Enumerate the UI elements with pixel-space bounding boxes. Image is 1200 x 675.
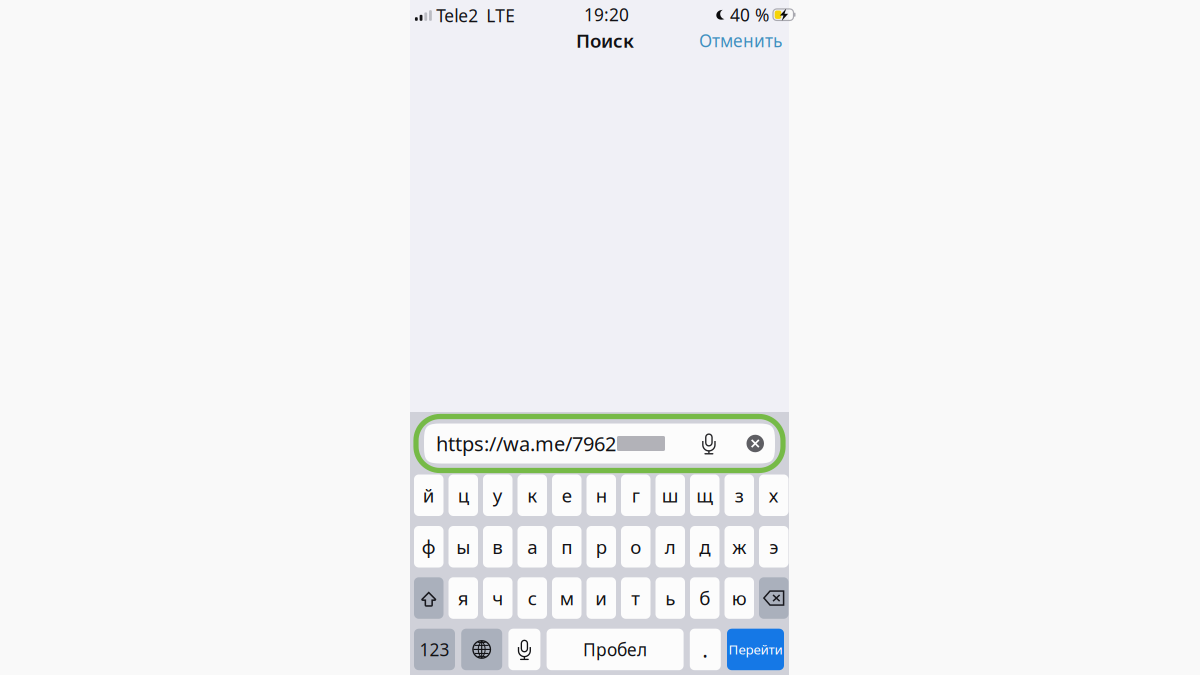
- button[interactable]: б: [690, 577, 719, 619]
- button[interactable]: ж: [724, 526, 754, 567]
- button[interactable]: й: [414, 474, 443, 516]
- button[interactable]: з: [724, 474, 754, 516]
- staticText: ч: [492, 586, 503, 610]
- staticText: Отменить: [699, 29, 782, 52]
- button[interactable]: м: [552, 577, 581, 619]
- staticText: ы: [456, 534, 470, 559]
- button[interactable]: е: [552, 474, 581, 516]
- button[interactable]: Delete: [759, 577, 788, 619]
- staticText: 19:20: [584, 3, 629, 26]
- staticText: у: [493, 483, 503, 508]
- button[interactable]: ш: [655, 474, 685, 516]
- staticText: о: [630, 534, 641, 559]
- staticText: 123: [419, 638, 449, 661]
- button[interactable]: о: [621, 526, 650, 567]
- button[interactable]: ы: [448, 526, 478, 567]
- staticText: щ: [696, 483, 713, 508]
- staticText: б: [699, 586, 710, 610]
- button[interactable]: к: [517, 474, 547, 516]
- button[interactable]: Dictate: [508, 629, 540, 670]
- staticText: Пробел: [583, 638, 647, 661]
- button[interactable]: х: [759, 474, 788, 516]
- button[interactable]: т: [621, 577, 650, 619]
- button[interactable]: и: [586, 577, 616, 619]
- staticText: д: [699, 534, 710, 559]
- button[interactable]: в: [483, 526, 512, 567]
- button[interactable]: л: [655, 526, 685, 567]
- button[interactable]: Отменить: [695, 24, 786, 57]
- staticText: Поиск: [576, 28, 634, 53]
- staticText: п: [561, 534, 572, 559]
- staticText: ю: [732, 586, 747, 610]
- staticText: с: [528, 586, 537, 610]
- staticText: л: [665, 534, 676, 559]
- button[interactable]: .: [690, 629, 721, 670]
- staticText: .: [702, 635, 708, 664]
- staticText: ь: [665, 586, 675, 610]
- button[interactable]: р: [586, 526, 616, 567]
- button[interactable]: д: [690, 526, 719, 567]
- staticText: р: [596, 534, 607, 559]
- button[interactable]: ц: [448, 474, 478, 516]
- staticText: LTE: [486, 4, 515, 27]
- button[interactable]: Пробел: [547, 629, 684, 670]
- staticText: в: [492, 534, 503, 559]
- staticText: я: [458, 586, 469, 610]
- button[interactable]: Перейти: [727, 629, 784, 670]
- button[interactable]: э: [759, 526, 788, 567]
- button[interactable]: щ: [690, 474, 719, 516]
- staticText: й: [423, 483, 435, 508]
- staticText: ш: [662, 483, 679, 508]
- button[interactable]: г: [621, 474, 650, 516]
- button[interactable]: а: [517, 526, 547, 567]
- staticText: г: [632, 483, 640, 508]
- staticText: и: [595, 586, 607, 610]
- staticText: 40 %: [730, 3, 769, 26]
- staticText: х: [769, 483, 779, 508]
- staticText: т: [631, 586, 640, 610]
- staticText: Tele2: [436, 4, 478, 27]
- button[interactable]: ч: [483, 577, 512, 619]
- staticText: з: [735, 483, 744, 508]
- staticText: ж: [732, 534, 746, 559]
- staticText: м: [560, 586, 574, 610]
- staticText: ц: [458, 483, 469, 508]
- staticText: https://wa.me/7962: [436, 430, 616, 457]
- button[interactable]: ь: [655, 577, 685, 619]
- staticText: н: [596, 483, 607, 508]
- staticText: Перейти: [728, 641, 782, 658]
- staticText: е: [562, 483, 572, 508]
- button[interactable]: ф: [414, 526, 443, 567]
- button[interactable]: Shift: [414, 577, 443, 619]
- staticText: э: [769, 534, 778, 559]
- button[interactable]: 123: [414, 629, 455, 670]
- staticText: а: [527, 534, 537, 559]
- staticText: ф: [422, 534, 436, 559]
- button[interactable]: у: [483, 474, 512, 516]
- button[interactable]: я: [448, 577, 478, 619]
- staticText: к: [527, 483, 537, 508]
- button[interactable]: н: [586, 474, 616, 516]
- button[interactable]: ю: [724, 577, 754, 619]
- button[interactable]: п: [552, 526, 581, 567]
- button[interactable]: с: [517, 577, 547, 619]
- button[interactable]: Next keyboard: [461, 629, 502, 670]
